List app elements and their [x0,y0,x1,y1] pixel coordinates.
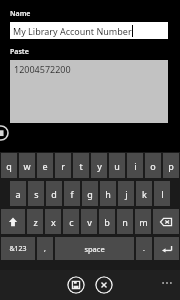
button[interactable]: . [136,237,152,260]
button[interactable]: u [109,153,125,178]
button[interactable]: l [154,181,170,206]
staticText: y [97,160,102,172]
staticText: v [87,216,92,228]
staticText: l [161,188,164,200]
staticText: &123 [9,244,27,254]
button[interactable]: space [55,237,134,260]
staticText: n [122,216,128,228]
staticText: 12004572200 [14,63,71,75]
staticText: q [6,160,12,172]
button[interactable]: f [64,181,80,206]
staticText: p [168,160,174,172]
staticText: . [143,244,145,254]
button[interactable]: m [135,209,151,234]
button[interactable]: n [117,209,133,234]
staticText: r [61,160,65,172]
staticText: w [23,160,31,172]
button[interactable]: z [27,209,43,234]
button[interactable]: r [55,153,71,178]
button[interactable]: 12004572200 [10,60,168,123]
button[interactable]: g [82,181,98,206]
button[interactable]: More options [160,276,174,290]
staticText: t [79,160,83,172]
staticText: z [33,216,38,228]
staticText: d [51,188,57,200]
button[interactable]: j [118,181,134,206]
button[interactable]: , [37,237,53,260]
button[interactable]: i [127,153,143,178]
button[interactable]: &123 [1,237,35,260]
button[interactable]: Save [67,276,85,294]
button[interactable]: Enter [154,237,179,260]
button[interactable]: e [37,153,53,178]
button[interactable]: c [63,209,79,234]
staticText: h [105,188,111,200]
button[interactable]: d [46,181,62,206]
staticText: i [134,160,137,172]
staticText: j [125,188,128,200]
staticText: s [34,188,39,200]
button[interactable]: q [1,153,17,178]
button[interactable]: b [99,209,115,234]
button[interactable]: Backspace [153,209,179,234]
button[interactable]: t [73,153,89,178]
staticText: k [142,188,147,200]
staticText: space [84,244,105,254]
staticText: m [139,216,148,228]
button[interactable]: Paste from clipboard [0,125,9,141]
staticText: u [114,160,120,172]
staticText: My Library Account Number [13,25,132,37]
staticText: o [150,160,156,172]
button[interactable]: My Library Account Number [10,22,168,39]
button[interactable]: a [10,181,26,206]
staticText: c [69,216,74,228]
staticText: e [42,160,48,172]
staticText: Paste [10,47,29,57]
staticText: x [51,216,56,228]
button[interactable]: y [91,153,107,178]
button[interactable]: Cancel [95,276,113,294]
button[interactable]: Shift [1,209,25,234]
staticText: , [44,244,46,254]
button[interactable]: k [136,181,152,206]
staticText: g [87,188,93,200]
button[interactable]: h [100,181,116,206]
button[interactable]: p [163,153,179,178]
button[interactable]: o [145,153,161,178]
button[interactable]: x [45,209,61,234]
staticText: Name [10,9,31,19]
button[interactable]: s [28,181,44,206]
button[interactable]: v [81,209,97,234]
button[interactable]: w [19,153,35,178]
staticText: a [15,188,21,200]
staticText: b [104,216,110,228]
staticText: f [70,188,74,200]
